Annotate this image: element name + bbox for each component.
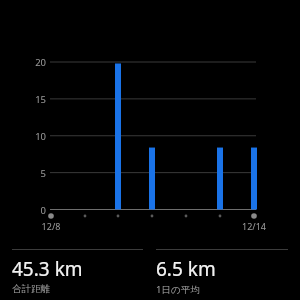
button[interactable]: 45.3 km bbox=[12, 249, 143, 295]
staticText: 15 bbox=[10, 93, 46, 106]
button[interactable]: Weekly distance chart bbox=[0, 0, 300, 240]
staticText: 12/8 bbox=[31, 220, 71, 232]
staticText: 10 bbox=[10, 130, 46, 143]
staticText: 1日の平均 bbox=[156, 283, 200, 296]
staticText: 12/14 bbox=[232, 220, 276, 232]
staticText: 0 bbox=[10, 204, 46, 217]
staticText: 5 bbox=[10, 167, 46, 180]
button[interactable]: 6.5 km bbox=[156, 249, 288, 296]
staticText: 6.5 km bbox=[156, 256, 216, 282]
staticText: 合計距離 bbox=[12, 283, 50, 295]
staticText: 45.3 km bbox=[12, 256, 83, 282]
staticText: 20 bbox=[10, 56, 46, 69]
